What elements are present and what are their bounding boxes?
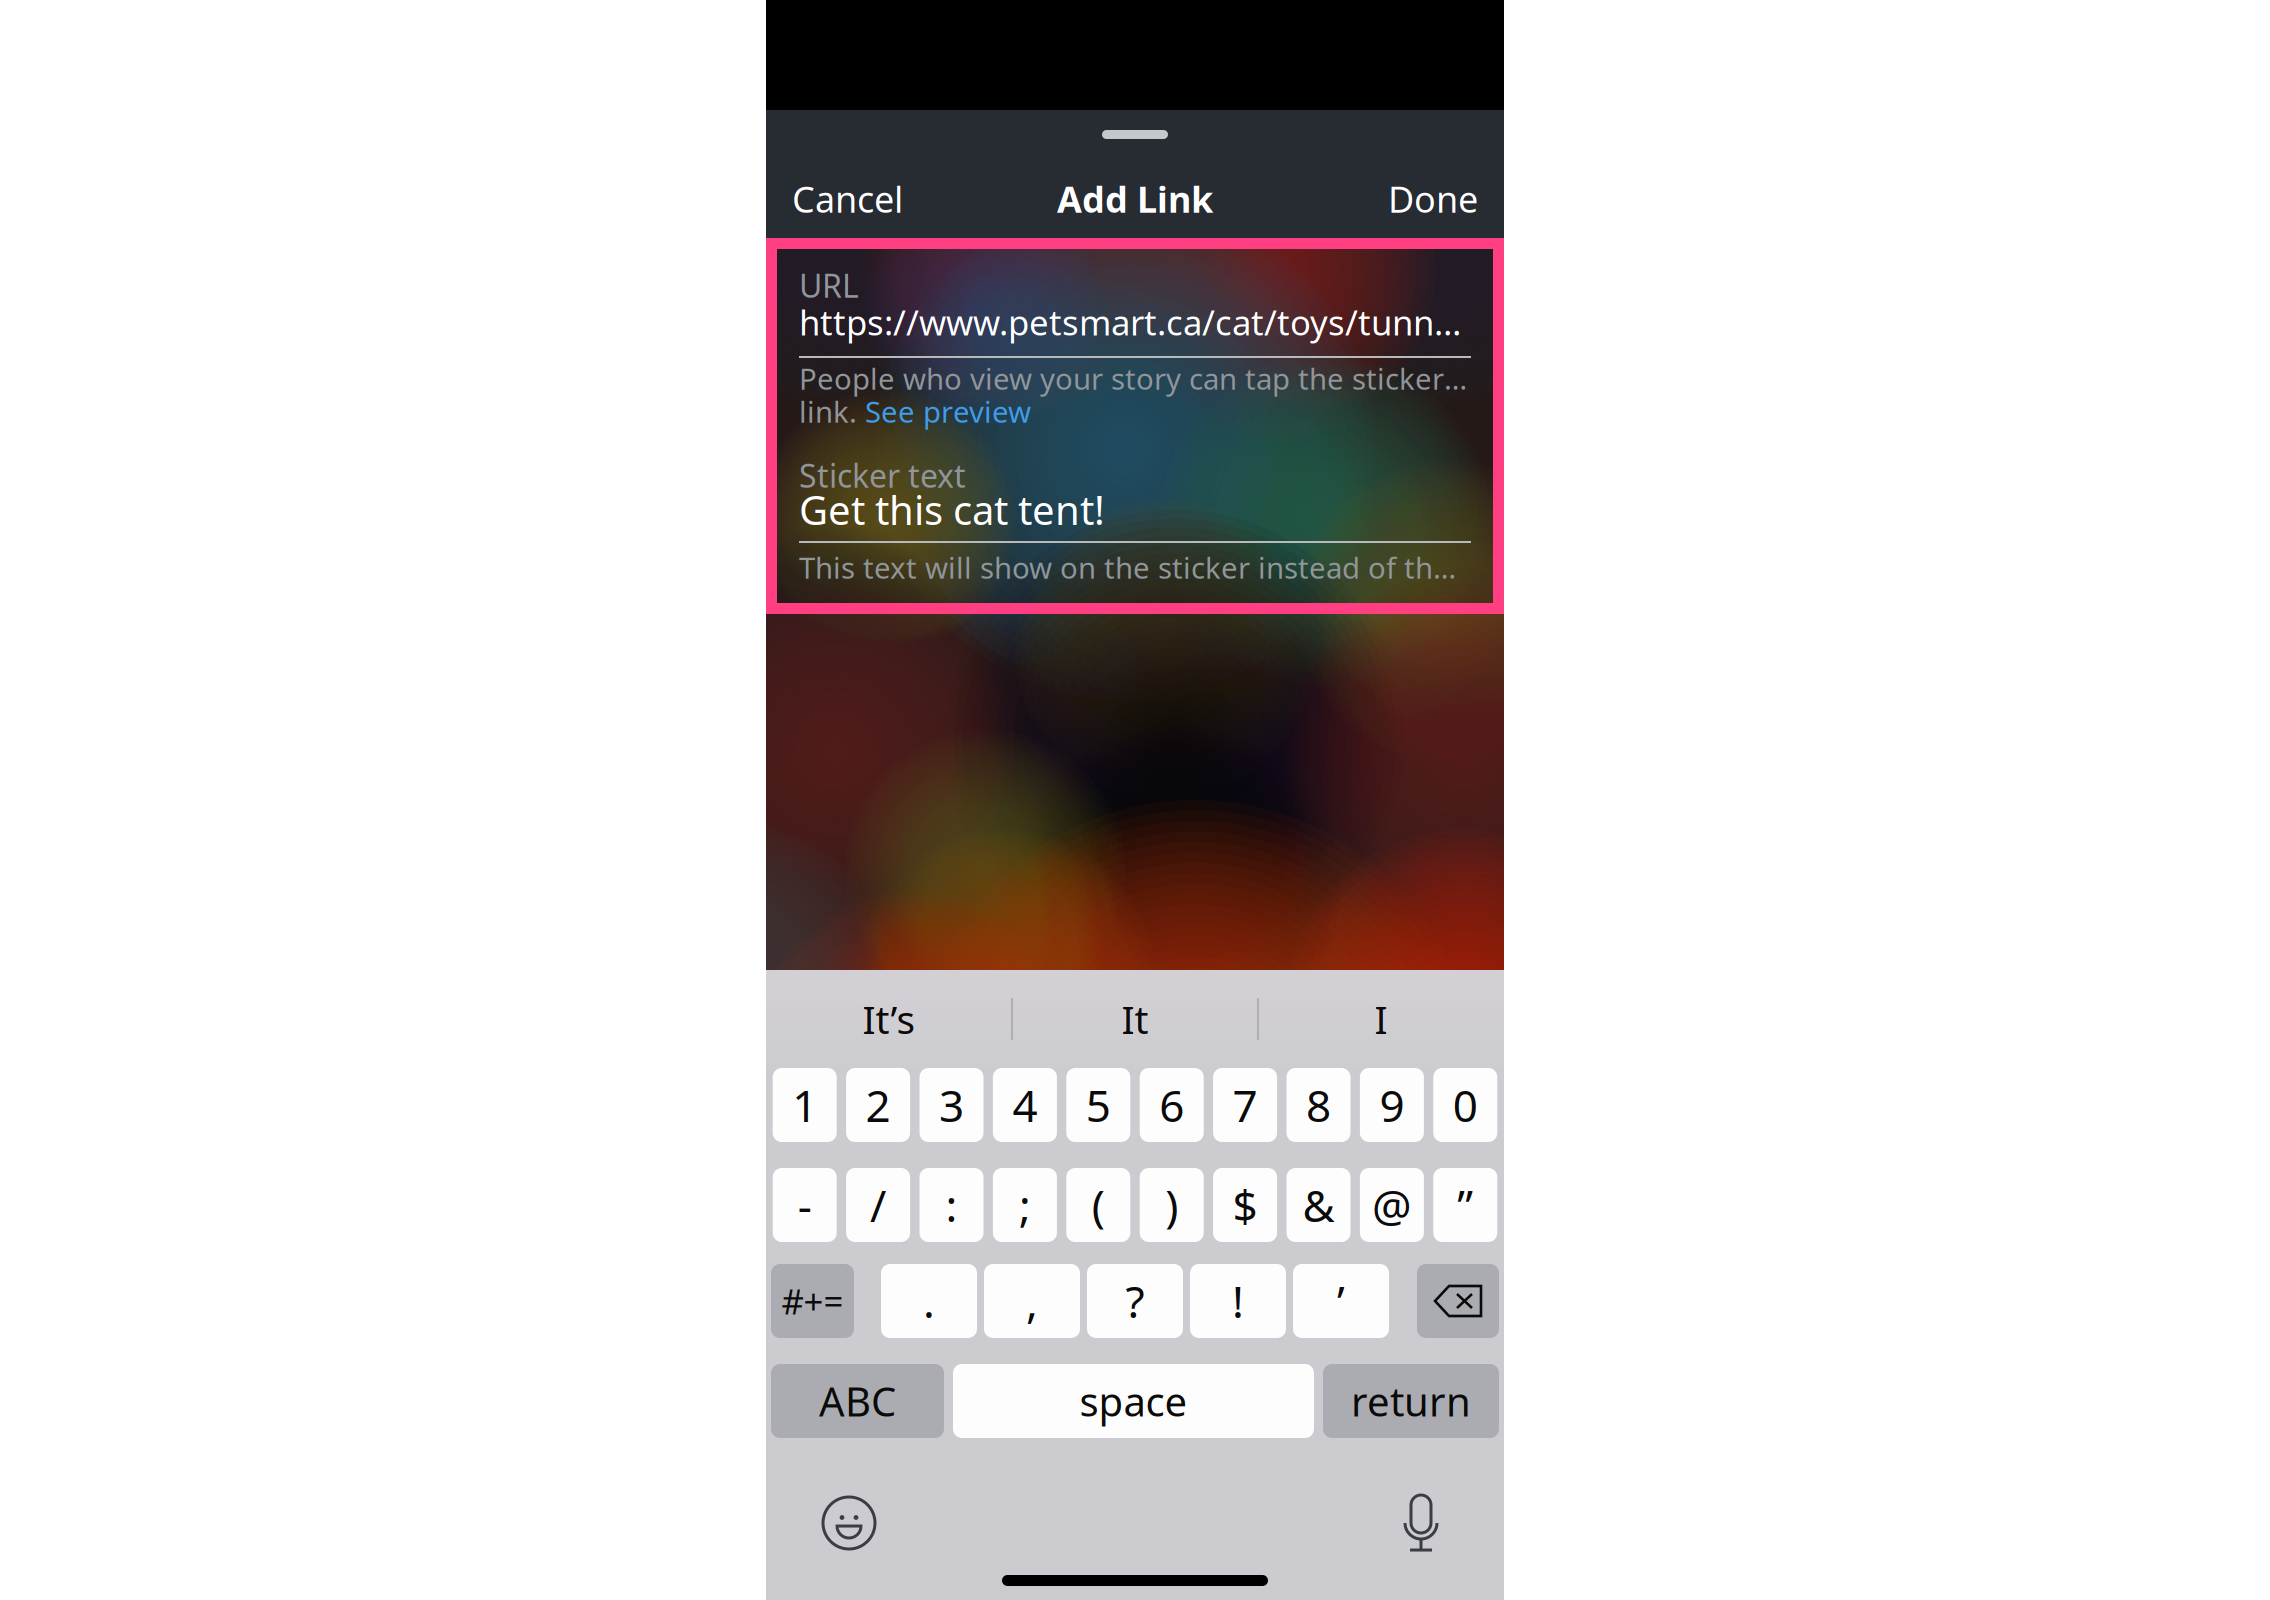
button[interactable]: 4 xyxy=(993,1068,1057,1142)
staticText: 5 xyxy=(1086,1076,1111,1134)
button[interactable]: ; xyxy=(993,1168,1057,1242)
button[interactable]: Dictation xyxy=(1393,1492,1449,1554)
button[interactable]: space xyxy=(953,1364,1314,1438)
button[interactable]: / xyxy=(846,1168,910,1242)
staticText: - xyxy=(798,1176,812,1234)
button[interactable]: Emoji keyboard xyxy=(821,1495,877,1551)
staticText: ” xyxy=(1457,1176,1473,1234)
staticText: return xyxy=(1351,1374,1471,1427)
button[interactable]: ! xyxy=(1190,1264,1286,1338)
button[interactable]: return xyxy=(1323,1364,1499,1438)
button[interactable]: 0 xyxy=(1433,1068,1497,1142)
button[interactable]: 7 xyxy=(1213,1068,1277,1142)
button[interactable]: 6 xyxy=(1140,1068,1204,1142)
button[interactable]: 3 xyxy=(919,1068,983,1142)
button[interactable]: . xyxy=(881,1264,977,1338)
button[interactable]: $ xyxy=(1213,1168,1277,1242)
staticText: Cancel xyxy=(792,175,903,223)
button[interactable]: Delete xyxy=(1417,1264,1499,1338)
staticText: 1 xyxy=(792,1076,817,1134)
staticText: 7 xyxy=(1233,1076,1258,1134)
button[interactable]: #+= xyxy=(771,1264,854,1338)
staticText: ) xyxy=(1165,1176,1178,1234)
button[interactable]: @ xyxy=(1360,1168,1424,1242)
button[interactable]: 5 xyxy=(1066,1068,1130,1142)
staticText: This text will show on the sticker inste… xyxy=(799,548,1471,587)
staticText: link. xyxy=(799,392,865,431)
button[interactable]: & xyxy=(1286,1168,1350,1242)
button[interactable]: 1 xyxy=(773,1068,837,1142)
staticText: 6 xyxy=(1159,1076,1184,1134)
staticText: It’s xyxy=(862,993,915,1045)
staticText: People who view your story can tap the s… xyxy=(799,359,1471,398)
staticText: space xyxy=(1079,1374,1187,1427)
staticText: 8 xyxy=(1306,1076,1331,1134)
button[interactable]: I xyxy=(1258,973,1504,1065)
staticText: ; xyxy=(1019,1176,1031,1234)
staticText: 3 xyxy=(939,1076,964,1134)
button[interactable]: ABC xyxy=(771,1364,944,1438)
button[interactable]: See preview xyxy=(865,392,1031,431)
staticText: Add Link xyxy=(1057,175,1213,223)
staticText: See preview xyxy=(865,392,1031,431)
button[interactable]: ’ xyxy=(1293,1264,1389,1338)
staticText: & xyxy=(1302,1176,1334,1234)
staticText: , xyxy=(1026,1272,1038,1330)
staticText: 0 xyxy=(1453,1076,1478,1134)
button[interactable]: 2 xyxy=(846,1068,910,1142)
staticText: It xyxy=(1121,993,1148,1045)
button[interactable]: ) xyxy=(1140,1168,1204,1242)
staticText: $ xyxy=(1233,1176,1258,1234)
staticText: ( xyxy=(1092,1176,1105,1234)
staticText: ABC xyxy=(819,1374,896,1427)
staticText: . xyxy=(923,1272,935,1330)
button[interactable]: : xyxy=(919,1168,983,1242)
staticText: : xyxy=(945,1176,957,1234)
staticText: ! xyxy=(1232,1272,1244,1330)
staticText: URL xyxy=(799,264,859,306)
staticText: 2 xyxy=(866,1076,891,1134)
button[interactable]: ? xyxy=(1087,1264,1183,1338)
button[interactable]: - xyxy=(773,1168,837,1242)
staticText: ? xyxy=(1125,1272,1144,1330)
button[interactable]: , xyxy=(984,1264,1080,1338)
staticText: Sticker text xyxy=(799,454,966,496)
staticText: / xyxy=(870,1176,886,1234)
button[interactable]: It’s xyxy=(766,973,1012,1065)
staticText: Done xyxy=(1388,175,1478,223)
button[interactable]: ” xyxy=(1433,1168,1497,1242)
button[interactable]: Done xyxy=(1362,164,1504,234)
staticText: #+= xyxy=(781,1278,843,1324)
button[interactable]: 8 xyxy=(1286,1068,1350,1142)
staticText: https://www.petsmart.ca/cat/toys/tunnels… xyxy=(799,299,1471,345)
staticText: @ xyxy=(1372,1176,1412,1234)
staticText: I xyxy=(1374,993,1387,1045)
staticText: 4 xyxy=(1012,1076,1037,1134)
button[interactable]: It xyxy=(1012,973,1258,1065)
staticText: Get this cat tent! xyxy=(799,483,1105,536)
staticText: 9 xyxy=(1379,1076,1404,1134)
button[interactable]: ( xyxy=(1066,1168,1130,1242)
button[interactable]: Cancel xyxy=(766,164,929,234)
button[interactable]: 9 xyxy=(1360,1068,1424,1142)
staticText: ’ xyxy=(1337,1272,1345,1330)
